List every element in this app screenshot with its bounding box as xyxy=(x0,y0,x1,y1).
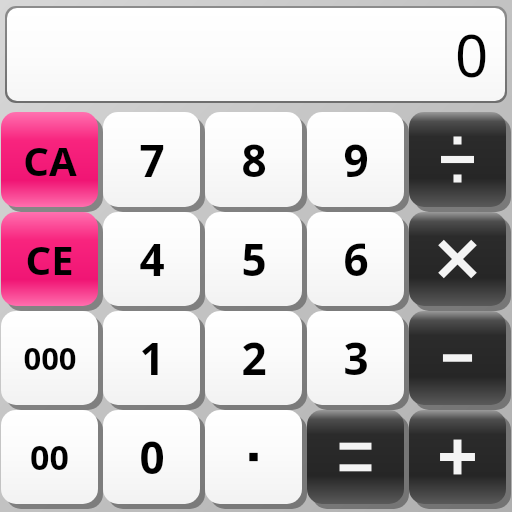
staticText: 8 xyxy=(241,130,267,190)
staticText: 1 xyxy=(139,328,165,388)
staticText: 6 xyxy=(343,229,369,289)
staticText: CE xyxy=(25,232,74,286)
staticText: 7 xyxy=(139,130,165,190)
button[interactable]: Divide xyxy=(409,112,506,207)
staticText: CA xyxy=(23,133,77,187)
button[interactable]: 5 xyxy=(205,212,302,306)
staticText: 9 xyxy=(343,130,369,190)
staticText: 3 xyxy=(343,328,369,388)
staticText: 0 xyxy=(455,15,489,94)
staticText: 5 xyxy=(241,229,267,289)
staticText: 2 xyxy=(241,328,267,388)
button[interactable]: Minus xyxy=(409,311,506,405)
button[interactable]: 0 xyxy=(103,410,200,504)
button[interactable]: Decimal point xyxy=(205,410,302,504)
button[interactable]: 00 xyxy=(1,410,98,504)
button[interactable]: 6 xyxy=(307,212,404,306)
button[interactable]: 1 xyxy=(103,311,200,405)
button[interactable]: 9 xyxy=(307,112,404,207)
button[interactable]: 4 xyxy=(103,212,200,306)
button[interactable]: 8 xyxy=(205,112,302,207)
button[interactable]: 7 xyxy=(103,112,200,207)
button[interactable]: CE xyxy=(1,212,98,306)
button[interactable]: 000 xyxy=(1,311,98,405)
button[interactable]: Plus xyxy=(409,410,506,504)
button[interactable]: CA xyxy=(1,112,98,207)
staticText: 0 xyxy=(139,427,165,487)
staticText: 00 xyxy=(30,434,69,480)
staticText: 4 xyxy=(139,229,165,289)
button[interactable]: 3 xyxy=(307,311,404,405)
staticText: 000 xyxy=(23,337,77,379)
button[interactable]: Multiply xyxy=(409,212,506,306)
button[interactable]: 2 xyxy=(205,311,302,405)
button[interactable]: Equals xyxy=(307,410,404,504)
